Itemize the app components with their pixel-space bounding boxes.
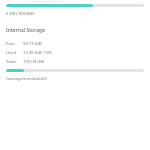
staticText: 6 GB LPDDR4X: [6, 11, 35, 17]
button[interactable]: Internal Storage: [0, 27, 52, 34]
staticText: 13.36 GiB 13%: [23, 50, 53, 56]
button[interactable]: Memory: [0, 0, 150, 2]
staticText: Free: [6, 41, 23, 47]
staticText: Memory: [6, 0, 21, 2]
staticText: 107.09 GiB: [23, 59, 45, 65]
button[interactable]: Used: [6, 50, 144, 56]
staticText: /storage/emulated/0: [6, 76, 47, 82]
staticText: Total: [6, 59, 23, 65]
staticText: 3.78 GiB / 5.63 GiB: [31, 0, 63, 2]
button[interactable]: Free: [6, 41, 144, 47]
staticText: Used: [6, 50, 23, 56]
staticText: 93.73 GiB: [23, 41, 42, 47]
button[interactable]: Total: [6, 59, 144, 65]
